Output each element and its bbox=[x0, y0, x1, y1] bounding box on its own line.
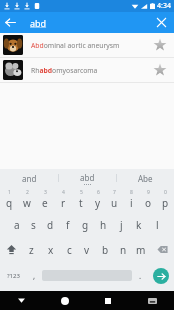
button[interactable]: Backspace bbox=[150, 237, 174, 262]
staticText: l bbox=[156, 218, 159, 232]
button[interactable]: Clear search bbox=[151, 12, 172, 33]
button[interactable]: Home bbox=[43, 291, 86, 310]
staticText: 9 bbox=[147, 189, 150, 196]
staticText: abd bbox=[30, 17, 47, 29]
staticText: ?123 bbox=[7, 272, 20, 280]
button[interactable]: d bbox=[42, 212, 59, 237]
button[interactable]: c bbox=[60, 237, 78, 262]
staticText: r bbox=[61, 196, 66, 210]
button[interactable]: Enter bbox=[148, 262, 174, 289]
staticText: x bbox=[48, 243, 54, 257]
staticText: abd bbox=[80, 172, 95, 183]
staticText: 6 bbox=[97, 189, 100, 196]
staticText: 4 bbox=[62, 189, 65, 196]
button[interactable]: k bbox=[130, 212, 148, 237]
staticText: u bbox=[111, 196, 118, 210]
staticText: 7 bbox=[113, 189, 116, 196]
button[interactable]: b bbox=[96, 237, 114, 262]
button[interactable]: ?123 bbox=[0, 262, 26, 289]
button[interactable]: 9 bbox=[140, 187, 157, 212]
staticText: z bbox=[29, 243, 34, 257]
staticText: 5 bbox=[80, 189, 83, 196]
button[interactable]: , bbox=[26, 262, 42, 289]
button[interactable]: Recents bbox=[86, 291, 130, 310]
staticText: 1 bbox=[8, 189, 11, 196]
button[interactable]: abd bbox=[30, 17, 151, 29]
staticText: d bbox=[47, 218, 54, 232]
button[interactable]: Back bbox=[0, 12, 21, 33]
staticText: Abdominal aortic aneurysm bbox=[31, 41, 120, 50]
button[interactable]: z bbox=[22, 237, 41, 262]
staticText: 4:34 bbox=[157, 1, 171, 11]
button[interactable]: 8 bbox=[123, 187, 140, 212]
button[interactable]: m bbox=[132, 237, 150, 262]
staticText: s bbox=[31, 218, 36, 232]
button[interactable]: v bbox=[78, 237, 96, 262]
button[interactable]: f bbox=[59, 212, 76, 237]
button[interactable]: 1 bbox=[0, 187, 18, 212]
staticText: e bbox=[42, 196, 48, 210]
staticText: 3 bbox=[44, 189, 47, 196]
button[interactable]: Shift bbox=[0, 237, 22, 262]
staticText: 8 bbox=[130, 189, 133, 196]
button[interactable]: j bbox=[112, 212, 130, 237]
staticText: p bbox=[162, 196, 169, 210]
staticText: . bbox=[139, 270, 142, 281]
staticText: v bbox=[84, 243, 90, 257]
staticText: Abe bbox=[138, 173, 153, 184]
staticText: b bbox=[102, 243, 109, 257]
button[interactable]: and bbox=[0, 169, 58, 187]
button[interactable]: 3 bbox=[36, 187, 54, 212]
button[interactable]: 0 bbox=[157, 187, 174, 212]
staticText: f bbox=[66, 218, 70, 232]
staticText: j bbox=[120, 218, 123, 232]
button[interactable]: abd bbox=[59, 169, 116, 187]
button[interactable]: x bbox=[41, 237, 60, 262]
button[interactable]: 4 bbox=[54, 187, 72, 212]
button[interactable]: Abdominal aortic aneurysm bbox=[0, 33, 174, 57]
staticText: k bbox=[136, 218, 142, 232]
button[interactable]: 5 bbox=[72, 187, 89, 212]
button[interactable]: Favorite bbox=[149, 59, 171, 81]
staticText: g bbox=[82, 218, 89, 232]
button[interactable]: n bbox=[114, 237, 132, 262]
button[interactable]: 7 bbox=[106, 187, 123, 212]
button[interactable]: 6 bbox=[89, 187, 106, 212]
button[interactable]: Favorite bbox=[149, 34, 171, 56]
staticText: and bbox=[22, 173, 37, 184]
staticText: h bbox=[100, 218, 107, 232]
button[interactable]: Hide keyboard bbox=[0, 291, 43, 310]
button[interactable]: 2 bbox=[18, 187, 36, 212]
staticText: 2 bbox=[26, 189, 29, 196]
button[interactable]: Switch keyboard bbox=[130, 291, 174, 310]
staticText: Rhabdomyosarcoma bbox=[31, 66, 98, 75]
staticText: , bbox=[33, 270, 36, 281]
button[interactable]: l bbox=[148, 212, 166, 237]
staticText: w bbox=[23, 196, 31, 210]
button[interactable]: g bbox=[76, 212, 94, 237]
staticText: o bbox=[145, 196, 152, 210]
staticText: m bbox=[136, 243, 146, 257]
button[interactable]: Rhabdomyosarcoma bbox=[0, 58, 174, 82]
staticText: t bbox=[79, 196, 83, 210]
staticText: y bbox=[95, 196, 101, 210]
staticText: c bbox=[67, 243, 72, 257]
button[interactable]: s bbox=[25, 212, 42, 237]
button[interactable]: h bbox=[94, 212, 112, 237]
button[interactable]: a bbox=[8, 212, 25, 237]
staticText: 0 bbox=[164, 189, 167, 196]
button[interactable]: Abe bbox=[117, 169, 174, 187]
staticText: i bbox=[130, 196, 133, 210]
staticText: a bbox=[14, 218, 20, 232]
staticText: n bbox=[120, 243, 127, 257]
staticText: q bbox=[6, 196, 13, 210]
button[interactable]: . bbox=[132, 262, 148, 289]
